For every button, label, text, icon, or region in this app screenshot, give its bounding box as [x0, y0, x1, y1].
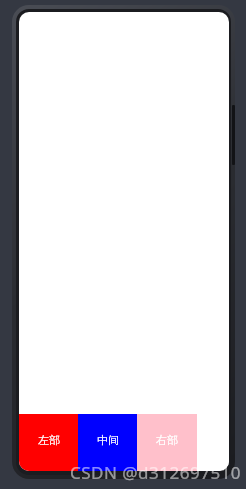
- button[interactable]: 右部: [137, 414, 197, 471]
- staticText: 中间: [97, 433, 119, 447]
- button[interactable]: 左部: [19, 414, 78, 471]
- staticText: CSDN @d312697510: [70, 461, 242, 484]
- staticText: 右部: [156, 433, 178, 447]
- staticText: 左部: [38, 433, 60, 447]
- button[interactable]: 中间: [78, 414, 137, 471]
